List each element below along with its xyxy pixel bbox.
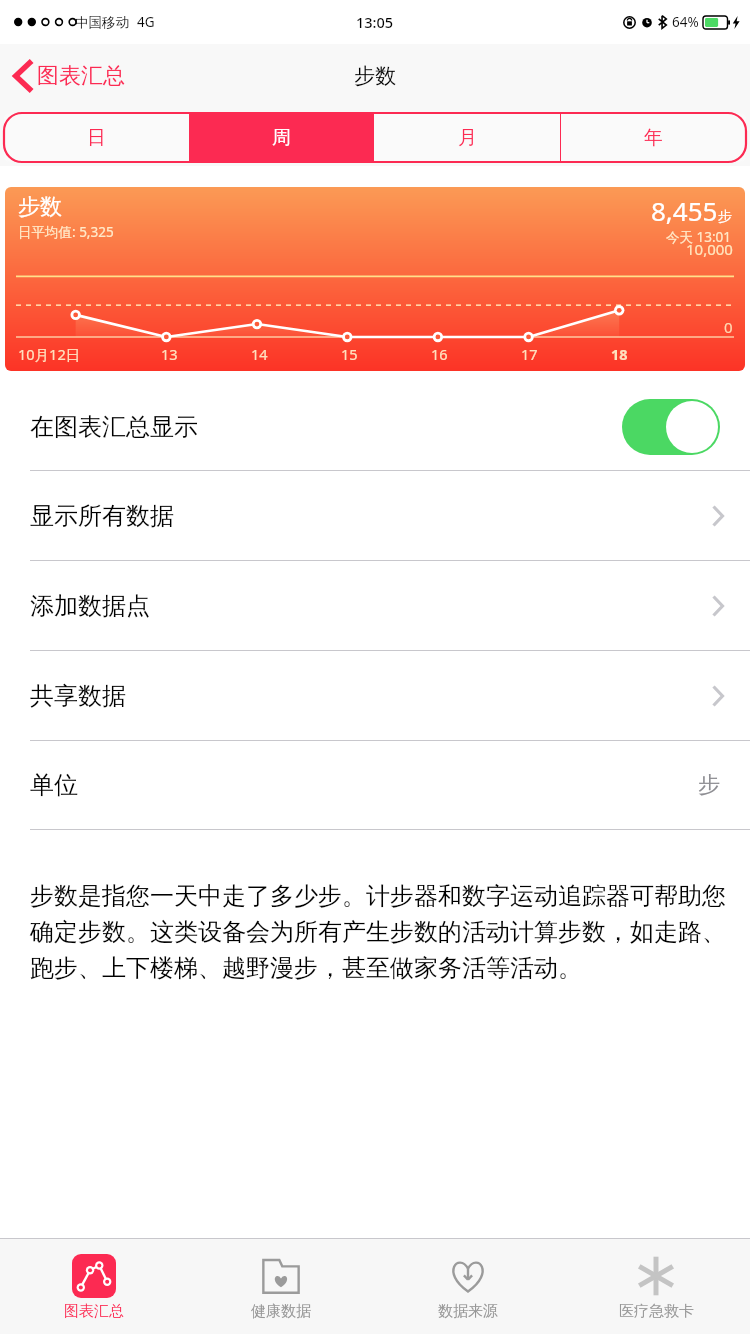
button[interactable]: 周 bbox=[189, 113, 374, 162]
staticText: 15 bbox=[341, 344, 358, 364]
staticText: 10,000 bbox=[686, 239, 733, 259]
button[interactable]: 日 bbox=[4, 113, 189, 162]
staticText: 医疗急救卡 bbox=[619, 1302, 694, 1321]
staticText: 10月12日 bbox=[18, 344, 81, 364]
staticText: 步 bbox=[698, 771, 720, 799]
staticText: 月 bbox=[458, 126, 477, 150]
staticText: 16 bbox=[431, 344, 448, 364]
button[interactable]: 图表汇总 bbox=[0, 44, 137, 108]
button[interactable]: 医疗急救卡 bbox=[562, 1239, 750, 1334]
staticText: 年 bbox=[644, 126, 663, 150]
staticText: 步数 bbox=[18, 193, 62, 221]
staticText: 0 bbox=[724, 317, 733, 337]
staticText: 图表汇总 bbox=[37, 62, 125, 90]
staticText: 14 bbox=[251, 344, 268, 364]
button[interactable]: 添加数据点 bbox=[0, 561, 750, 650]
button[interactable]: 健康数据 bbox=[187, 1239, 374, 1334]
button[interactable]: Toggle show in dashboard bbox=[622, 399, 720, 455]
staticText: 添加数据点 bbox=[30, 591, 150, 621]
staticText: 数据来源 bbox=[438, 1302, 498, 1321]
button[interactable]: 在图表汇总显示 bbox=[0, 383, 750, 470]
button[interactable]: 显示所有数据 bbox=[0, 471, 750, 560]
staticText: 今天 13:01 bbox=[666, 228, 732, 246]
staticText: 18 bbox=[611, 344, 628, 364]
staticText: 步数 bbox=[354, 63, 396, 89]
staticText: 17 bbox=[521, 344, 538, 364]
button[interactable]: 月 bbox=[374, 113, 560, 162]
staticText: 8,455 bbox=[651, 193, 718, 228]
button[interactable]: 共享数据 bbox=[0, 651, 750, 740]
staticText: 单位 bbox=[30, 770, 78, 800]
staticText: 显示所有数据 bbox=[30, 501, 174, 531]
staticText: 步数是指您一天中走了多少步。计步器和数字运动追踪器可帮助您确定步数。这类设备会为… bbox=[30, 881, 726, 983]
staticText: 中国移动 bbox=[75, 14, 129, 31]
button[interactable]: 图表汇总 bbox=[0, 1239, 187, 1334]
staticText: 步 bbox=[718, 208, 732, 226]
button[interactable]: 数据来源 bbox=[374, 1239, 562, 1334]
staticText: 日平均值: 5,325 bbox=[18, 223, 114, 241]
staticText: 13:05 bbox=[356, 12, 394, 32]
staticText: 4G bbox=[137, 13, 155, 31]
button[interactable]: 步数 bbox=[5, 187, 745, 371]
staticText: 在图表汇总显示 bbox=[30, 412, 198, 442]
button[interactable]: 单位 bbox=[0, 741, 750, 829]
staticText: 64% bbox=[672, 13, 699, 31]
staticText: 周 bbox=[272, 126, 291, 150]
button[interactable]: 年 bbox=[560, 113, 746, 162]
staticText: 共享数据 bbox=[30, 681, 126, 711]
staticText: 日 bbox=[87, 126, 106, 150]
staticText: 图表汇总 bbox=[64, 1302, 124, 1321]
staticText: 13 bbox=[161, 344, 178, 364]
staticText: 健康数据 bbox=[251, 1302, 311, 1321]
